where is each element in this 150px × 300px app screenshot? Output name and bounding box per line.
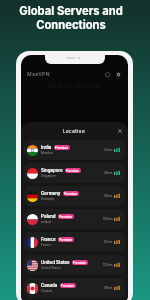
staticText: Premium bbox=[73, 261, 87, 265]
staticText: India bbox=[41, 145, 52, 150]
staticText: Premium bbox=[61, 284, 75, 288]
button[interactable]: Close bbox=[116, 127, 124, 135]
staticText: poland bbox=[41, 220, 51, 224]
staticText: Canada bbox=[41, 289, 53, 293]
staticText: Premium bbox=[66, 169, 80, 173]
button[interactable]: Singapore bbox=[24, 163, 125, 183]
button[interactable]: Germany bbox=[24, 186, 125, 206]
staticText: 54ms bbox=[104, 148, 113, 152]
staticText: Canada bbox=[41, 283, 58, 288]
staticText: Global Servers and bbox=[0, 4, 146, 18]
staticText: Poland bbox=[41, 214, 56, 219]
staticText: Germany bbox=[41, 191, 61, 196]
staticText: France bbox=[41, 243, 52, 247]
staticText: Premium bbox=[59, 238, 73, 242]
staticText: United States bbox=[41, 266, 61, 270]
staticText: Premium bbox=[64, 192, 78, 196]
button[interactable]: France bbox=[24, 232, 125, 252]
staticText: United States bbox=[41, 260, 70, 265]
button[interactable]: United States bbox=[24, 255, 125, 275]
staticText: 82ms bbox=[104, 240, 113, 244]
staticText: Germany bbox=[41, 197, 55, 201]
staticText: MaxVPN bbox=[27, 71, 50, 78]
staticText: Singapore bbox=[41, 174, 56, 178]
staticText: 103ms bbox=[103, 217, 113, 221]
staticText: Singapore bbox=[41, 168, 63, 173]
staticText: Connections bbox=[0, 18, 146, 32]
staticText: 58ms bbox=[104, 194, 113, 198]
button[interactable]: Premium bbox=[104, 71, 111, 78]
staticText: 98ms bbox=[104, 286, 113, 290]
staticText: SELECT A LOCATION bbox=[21, 83, 128, 89]
staticText: France bbox=[41, 237, 56, 242]
staticText: Premium bbox=[59, 215, 73, 219]
staticText: Location bbox=[63, 129, 86, 134]
staticText: Mumbai bbox=[41, 151, 53, 155]
button[interactable]: Canada bbox=[24, 278, 125, 298]
button[interactable]: Poland bbox=[24, 209, 125, 229]
button[interactable]: India bbox=[24, 140, 125, 160]
button[interactable]: Settings bbox=[115, 71, 122, 78]
staticText: 46ms bbox=[104, 171, 113, 175]
staticText: 120ms bbox=[103, 263, 113, 267]
staticText: Premium bbox=[55, 146, 69, 150]
